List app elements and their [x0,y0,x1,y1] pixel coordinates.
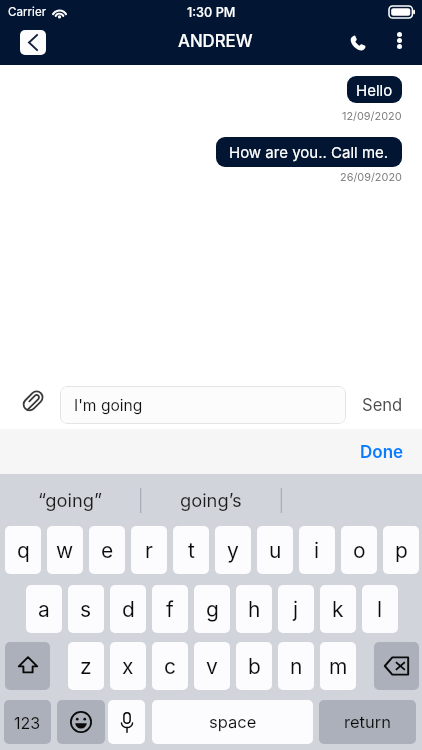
button[interactable]: Call [341,26,374,59]
button[interactable]: Send [352,388,412,422]
button[interactable]: Back [20,30,46,55]
button[interactable]: b [236,642,272,690]
staticText: 1:30 PM [187,5,236,20]
button[interactable]: m [320,642,356,690]
button[interactable]: t [173,526,209,574]
button[interactable]: 123 [4,700,51,744]
button[interactable]: I'm going [60,386,346,424]
staticText: u [269,538,282,563]
staticText: j [293,597,299,622]
staticText: a [38,597,50,622]
button[interactable]: Attach file [16,387,47,418]
button[interactable]: r [131,526,167,574]
button[interactable]: i [299,526,335,574]
button[interactable]: w [47,526,83,574]
button[interactable]: Hello [347,76,402,103]
staticText: r [145,538,153,563]
button[interactable]: k [320,585,356,633]
staticText: b [248,654,261,679]
staticText: s [80,597,92,622]
staticText: n [290,654,303,679]
button[interactable]: “going” [0,474,140,526]
staticText: g [206,597,219,622]
staticText: going’s [180,489,242,511]
button[interactable]: n [278,642,314,690]
staticText: v [206,654,218,679]
staticText: Done [360,442,404,463]
button[interactable]: going’s [140,474,281,526]
button[interactable]: q [5,526,41,574]
button[interactable]: a [26,585,62,633]
button[interactable]: h [236,585,272,633]
staticText: x [122,654,134,679]
button[interactable]: f [152,585,188,633]
staticText: “going” [38,489,103,511]
button[interactable]: Emoji [57,700,105,744]
staticText: How are you.. Call me. [229,143,389,161]
staticText: i [314,538,320,563]
staticText: c [164,654,176,679]
staticText: Carrier [8,5,47,19]
button[interactable]: return [319,700,416,744]
staticText: l [377,597,383,622]
staticText: y [227,538,239,563]
staticText: f [166,597,174,622]
button[interactable]: u [257,526,293,574]
button[interactable]: Dictation [108,700,145,744]
button[interactable]: e [89,526,125,574]
button[interactable]: y [215,526,251,574]
staticText: d [122,597,135,622]
button[interactable]: p [383,526,419,574]
staticText: q [17,538,30,563]
staticText: e [101,538,114,563]
button[interactable]: Shift [5,642,50,690]
button[interactable]: How are you.. Call me. [216,137,402,167]
staticText: Send [362,395,403,415]
button[interactable]: Done [360,432,404,472]
button[interactable]: l [362,585,398,633]
button[interactable]: x [110,642,146,690]
button[interactable]: d [110,585,146,633]
staticText: z [80,654,92,679]
staticText: h [248,597,261,622]
staticText: t [188,538,195,563]
button[interactable]: v [194,642,230,690]
staticText: 123 [14,713,41,732]
staticText: space [209,712,257,732]
button[interactable]: o [341,526,377,574]
staticText: Hello [356,81,393,99]
staticText: w [56,538,74,563]
staticText: ANDREW [178,31,253,51]
button[interactable]: j [278,585,314,633]
staticText: 12/09/2020 [342,109,402,122]
button[interactable]: s [68,585,104,633]
staticText: p [395,538,408,563]
staticText: m [329,654,348,679]
staticText: 26/09/2020 [340,170,402,183]
staticText: o [353,538,366,563]
staticText: I'm going [74,396,143,415]
button[interactable]: More options [385,26,414,55]
button[interactable]: space [152,700,313,744]
staticText: return [344,712,391,732]
button[interactable]: g [194,585,230,633]
button[interactable]: z [68,642,104,690]
button[interactable]: c [152,642,188,690]
button[interactable]: Backspace [374,642,419,690]
staticText: k [332,597,344,622]
